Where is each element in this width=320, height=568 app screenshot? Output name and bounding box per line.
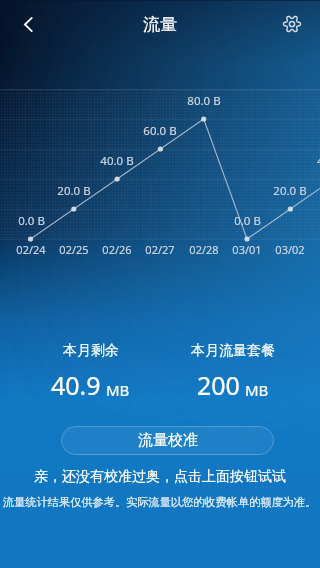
staticText: 流量 <box>143 14 177 35</box>
staticText: 本月流量套餐 <box>191 342 275 360</box>
button[interactable]: Back <box>4 0 52 48</box>
staticText: 200 <box>197 368 240 402</box>
staticText: 80.0 B <box>187 93 221 109</box>
staticText: 0.0 B <box>234 213 261 229</box>
staticText: 40.9 <box>51 368 101 402</box>
staticText: 02/26 <box>102 242 132 257</box>
staticText: 02/24 <box>16 242 46 257</box>
staticText: 02/28 <box>189 242 219 257</box>
staticText: 20.0 B <box>57 183 91 199</box>
staticText: 流量校准 <box>138 431 198 450</box>
staticText: 03/02 <box>275 242 305 257</box>
button[interactable]: 流量校准 <box>61 426 274 455</box>
button[interactable]: Settings <box>268 0 316 48</box>
button[interactable]: 本月剩余 <box>10 342 170 402</box>
staticText: MB <box>245 380 269 400</box>
staticText: 20.0 B <box>273 183 307 199</box>
staticText: 03/01 <box>232 242 262 257</box>
staticText: MB <box>106 380 130 400</box>
button[interactable]: 本月流量套餐 <box>153 342 313 402</box>
staticText: 亲，还没有校准过奥，点击上面按钮试试 <box>34 468 286 486</box>
staticText: 60.0 B <box>143 123 177 139</box>
staticText: 02/27 <box>145 242 175 257</box>
staticText: 0.0 B <box>18 213 45 229</box>
staticText: 本月剩余 <box>63 342 119 360</box>
staticText: 流量统计结果仅供参考。实际流量以您的收费帐单的额度为准。 <box>3 495 317 509</box>
staticText: 40.0 B <box>317 153 320 169</box>
staticText: 40.0 B <box>100 153 134 169</box>
staticText: 02/25 <box>59 242 89 257</box>
